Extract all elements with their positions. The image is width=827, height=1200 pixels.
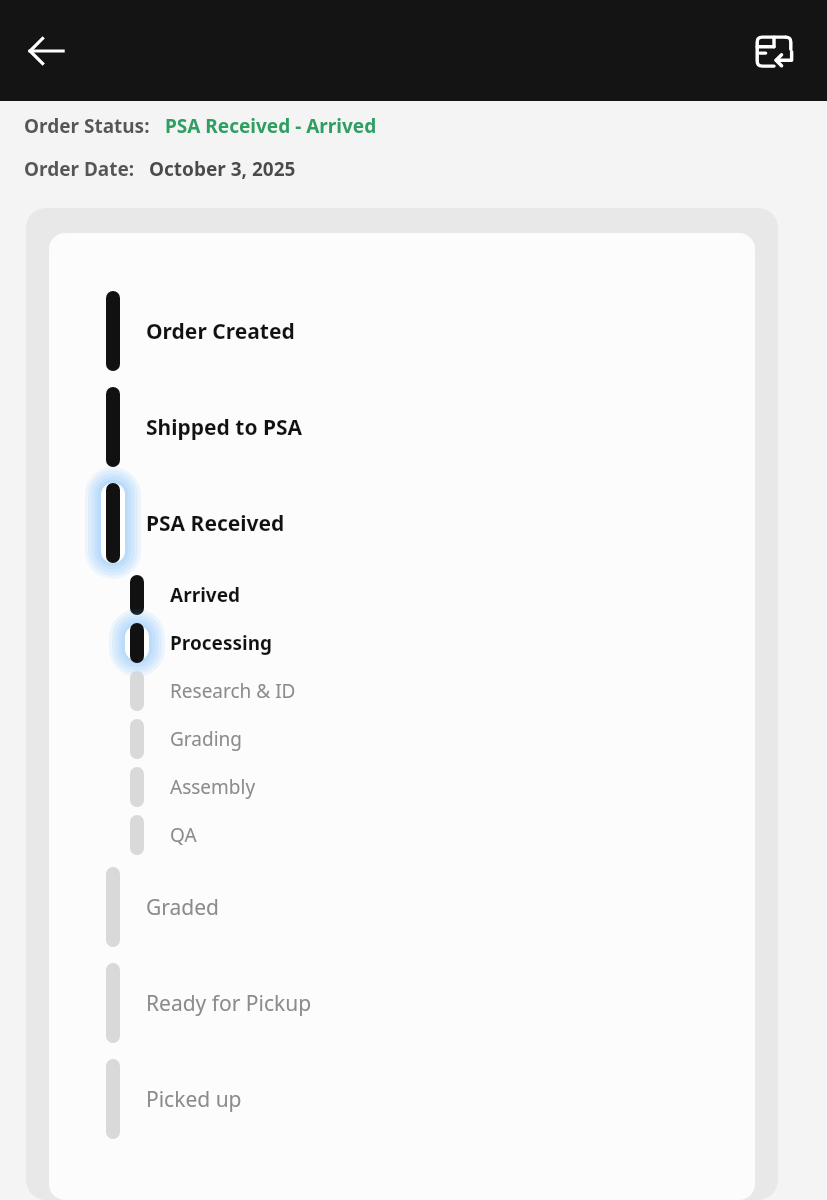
- button[interactable]: Arrived: [49, 571, 755, 619]
- button[interactable]: PSA Received: [49, 475, 755, 571]
- staticText: Order Date:: [24, 156, 135, 182]
- button[interactable]: Research & ID: [49, 667, 755, 715]
- button[interactable]: Return package: [743, 20, 805, 82]
- staticText: Arrived: [170, 582, 241, 608]
- staticText: Picked up: [146, 1085, 242, 1114]
- staticText: Grading: [170, 726, 242, 752]
- staticText: Shipped to PSA: [146, 413, 303, 442]
- button[interactable]: Order Created: [49, 283, 755, 379]
- button[interactable]: Picked up: [49, 1051, 755, 1147]
- button[interactable]: Shipped to PSA: [49, 379, 755, 475]
- button[interactable]: Ready for Pickup: [49, 955, 755, 1051]
- staticText: Assembly: [170, 774, 256, 800]
- staticText: Processing: [170, 630, 273, 656]
- staticText: Ready for Pickup: [146, 989, 312, 1018]
- button[interactable]: QA: [49, 811, 755, 859]
- button[interactable]: Assembly: [49, 763, 755, 811]
- staticText: Order Created: [146, 317, 295, 346]
- button[interactable]: Grading: [49, 715, 755, 763]
- button[interactable]: Back: [14, 19, 78, 83]
- button[interactable]: Graded: [49, 859, 755, 955]
- staticText: Research & ID: [170, 678, 296, 704]
- staticText: Order Status:: [24, 113, 150, 139]
- staticText: PSA Received - Arrived: [165, 113, 377, 139]
- staticText: PSA Received: [146, 509, 285, 538]
- staticText: Graded: [146, 893, 219, 922]
- button[interactable]: Processing: [49, 619, 755, 667]
- staticText: QA: [170, 822, 197, 848]
- staticText: October 3, 2025: [149, 156, 296, 182]
